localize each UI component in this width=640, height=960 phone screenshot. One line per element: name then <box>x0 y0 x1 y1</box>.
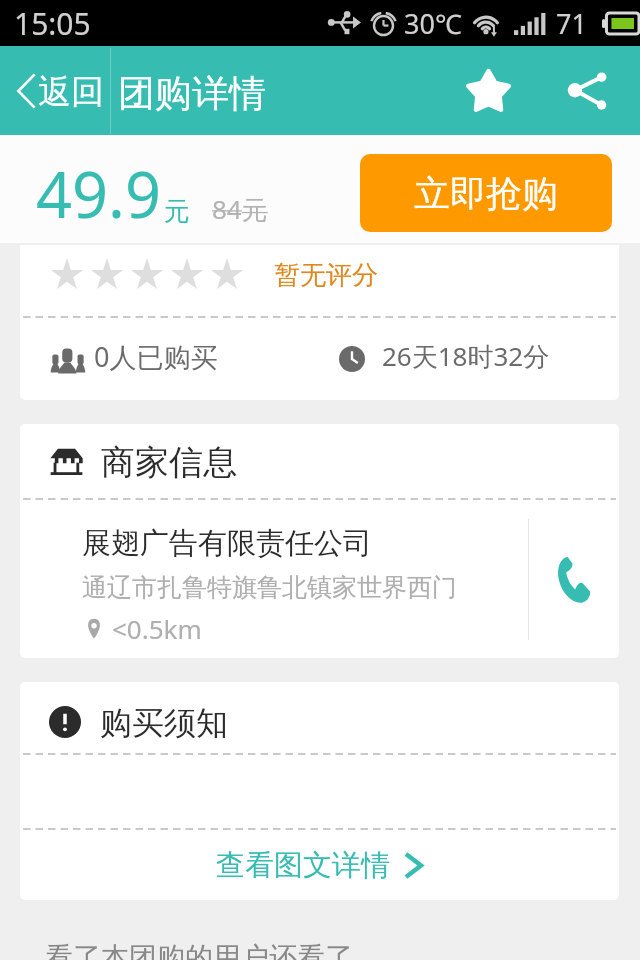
staticText: 49.9 <box>36 151 161 237</box>
staticText: 26天18时32分 <box>382 338 550 374</box>
button[interactable]: Call merchant <box>529 500 619 658</box>
staticText: 购买须知 <box>100 703 228 743</box>
button[interactable]: 返回 <box>0 46 112 135</box>
staticText: 查看图文详情 <box>216 847 390 884</box>
staticText: 展翅广告有限责任公司 <box>82 525 372 562</box>
staticText: 84元 <box>212 191 268 227</box>
button[interactable]: 查看图文详情 <box>20 830 619 900</box>
staticText: 团购详情 <box>118 70 266 117</box>
staticText: 立即抢购 <box>414 171 558 216</box>
staticText: <0.5km <box>112 611 202 646</box>
staticText: 商家信息 <box>101 441 237 484</box>
button[interactable]: Share <box>556 56 620 126</box>
staticText: 15:05 <box>14 3 91 44</box>
staticText: 暂无评分 <box>274 259 378 292</box>
staticText: 0人已购买 <box>94 338 218 375</box>
staticText: 看了本团购的用户还看了 <box>45 940 353 960</box>
button[interactable]: 立即抢购 <box>360 154 612 232</box>
staticText: 返回 <box>38 71 104 113</box>
staticText: 71 <box>556 5 587 42</box>
staticText: 元 <box>164 195 190 228</box>
staticText: 30℃ <box>404 5 462 42</box>
staticText: 通辽市扎鲁特旗鲁北镇家世界西门 <box>82 572 457 603</box>
button[interactable]: Favorite <box>456 56 520 126</box>
